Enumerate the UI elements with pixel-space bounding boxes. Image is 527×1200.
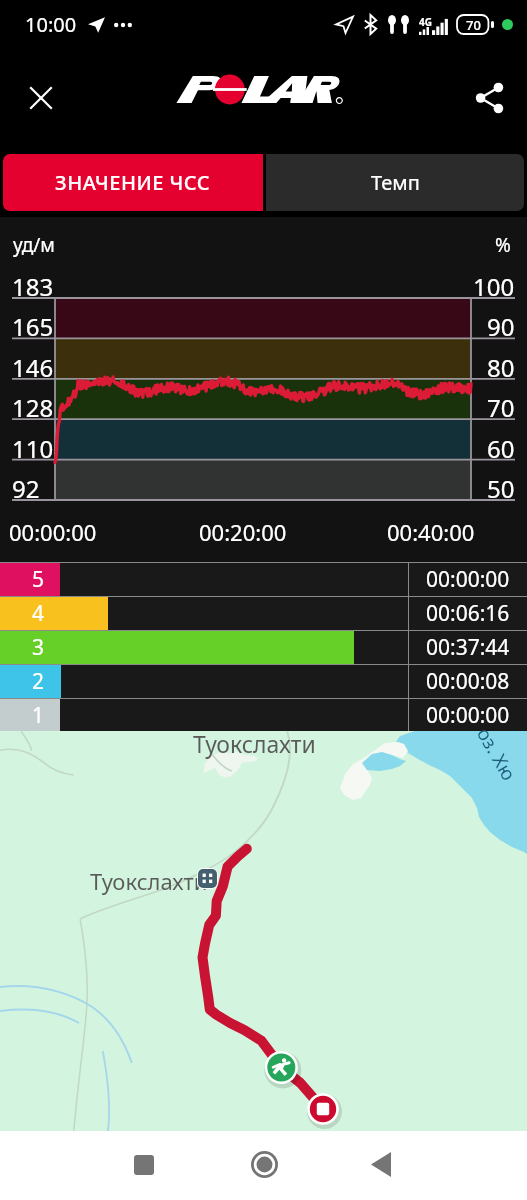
staticText: 183 [12,270,54,303]
staticText: Темп [371,169,420,196]
staticText: 80 [487,351,515,384]
staticText: 50 [487,472,515,505]
button[interactable]: Back [345,1131,417,1200]
staticText: 92 [12,472,40,505]
button[interactable]: 2 [0,665,527,698]
staticText: Туокслахти [90,866,208,896]
button[interactable]: Home [228,1131,300,1200]
button[interactable]: Close [12,70,68,126]
staticText: уд/м [13,232,55,258]
staticText: 4G [419,15,432,29]
staticText: 90 [487,310,515,343]
button[interactable]: 4 [0,597,527,630]
staticText: Туокслахти [193,728,316,759]
button[interactable]: Share [459,70,515,126]
staticText: 00:37:44 [426,633,510,662]
button[interactable]: ЗНАЧЕНИЕ ЧСС [3,154,263,211]
staticText: 00:40:00 [387,517,475,547]
button[interactable]: Темп [266,154,524,211]
staticText: 00:00:00 [426,701,510,730]
button[interactable]: 1 [0,699,527,732]
staticText: 70 [466,16,481,34]
staticText: 128 [12,391,54,424]
staticText: 70 [487,391,515,424]
staticText: 10:00 [25,11,77,38]
staticText: 4 [32,599,45,628]
staticText: 1 [32,701,45,730]
staticText: % [495,232,511,258]
staticText: 00:00:00 [426,565,510,594]
staticText: 3 [32,633,45,662]
staticText: 00:00:00 [9,517,97,547]
staticText: 60 [487,432,515,465]
staticText: 146 [12,351,54,384]
staticText: 00:06:16 [426,599,510,628]
staticText: 00:20:00 [199,517,287,547]
staticText: 5 [32,565,45,594]
staticText: 100 [473,270,515,303]
staticText: ЗНАЧЕНИЕ ЧСС [55,169,211,196]
button[interactable]: Recent apps [108,1131,180,1200]
staticText: 165 [12,310,54,343]
button[interactable]: Route map [0,731,527,1131]
staticText: 110 [12,432,54,465]
staticText: 00:00:08 [426,667,510,696]
button[interactable]: 5 [0,563,527,596]
staticText: 2 [32,667,45,696]
button[interactable]: 3 [0,631,527,664]
staticText: оз. Хю [471,723,522,785]
